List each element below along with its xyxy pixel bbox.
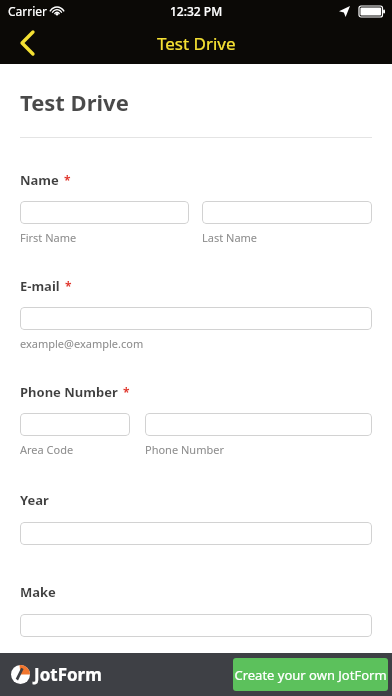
- staticText: Year: [20, 491, 49, 509]
- button[interactable]: JotForm: [11, 663, 102, 686]
- staticText: Carrier: [8, 3, 48, 19]
- button[interactable]: Create your own JotForm: [233, 658, 388, 691]
- staticText: *: [64, 172, 71, 188]
- button[interactable]: Back: [0, 22, 54, 64]
- button[interactable]: [20, 522, 372, 545]
- staticText: Phone Number: [145, 442, 224, 457]
- button[interactable]: [20, 413, 130, 436]
- staticText: Test Drive: [20, 87, 129, 117]
- staticText: Make: [20, 583, 56, 601]
- staticText: Area Code: [20, 442, 74, 457]
- staticText: Test Drive: [157, 32, 236, 55]
- staticText: *: [65, 278, 72, 294]
- button[interactable]: [145, 413, 372, 436]
- button[interactable]: [20, 307, 372, 330]
- staticText: Phone Number: [20, 383, 118, 401]
- button[interactable]: [20, 614, 372, 637]
- staticText: Last Name: [202, 230, 258, 245]
- staticText: First Name: [20, 230, 77, 245]
- staticText: *: [123, 384, 130, 400]
- button[interactable]: [202, 201, 372, 224]
- staticText: Name: [20, 171, 59, 189]
- staticText: 12:32 PM: [170, 3, 223, 19]
- staticText: Create your own JotForm: [234, 666, 387, 684]
- staticText: JotForm: [34, 663, 102, 686]
- staticText: example@example.com: [20, 336, 144, 351]
- button[interactable]: [20, 201, 189, 224]
- staticText: E-mail: [20, 277, 60, 295]
